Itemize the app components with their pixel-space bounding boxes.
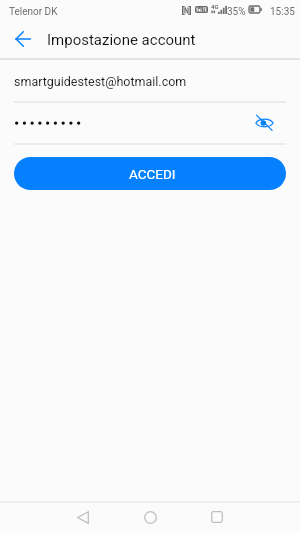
staticText: 4G <box>211 3 219 10</box>
staticText: 35% <box>227 6 246 18</box>
staticText: Impostazione account <box>47 31 196 49</box>
button[interactable]: Show password <box>251 110 277 136</box>
staticText: ACCEDI <box>129 166 176 182</box>
staticText: Telenor DK <box>9 6 58 18</box>
button[interactable]: Back <box>5 21 41 57</box>
button[interactable]: ACCEDI <box>14 157 286 190</box>
button[interactable]: Recents <box>200 503 234 531</box>
staticText: smartguidestest@hotmail.com <box>14 74 187 89</box>
button[interactable]: Show password <box>0 102 300 143</box>
staticText: 15:35 <box>270 6 295 18</box>
button[interactable]: smartguidestest@hotmail.com <box>14 59 300 101</box>
button[interactable]: Home <box>133 503 167 531</box>
button[interactable]: Back <box>66 503 100 531</box>
